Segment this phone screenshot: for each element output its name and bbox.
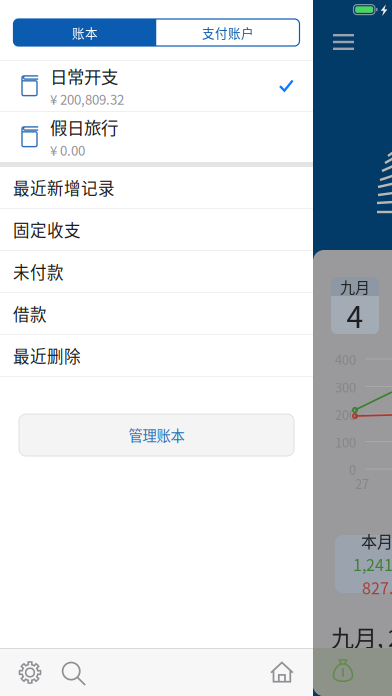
staticText: 本月	[361, 529, 392, 552]
button[interactable]: 最近删除	[0, 335, 313, 376]
staticText: 固定收支	[13, 218, 81, 241]
button[interactable]: 未付款	[0, 251, 313, 292]
button[interactable]: Search	[52, 649, 92, 696]
staticText: 最近新增记录	[13, 176, 115, 199]
button[interactable]: 固定收支	[0, 209, 313, 250]
staticText: 100	[335, 432, 356, 451]
staticText: 0	[349, 460, 356, 479]
button[interactable]: 支付账户	[156, 19, 299, 46]
button[interactable]: Home	[256, 649, 308, 696]
staticText: 日常开支	[50, 63, 118, 88]
staticText: 九月, 2	[331, 620, 392, 653]
staticText: ¥ 0.00	[50, 140, 85, 160]
staticText: 827.	[362, 576, 392, 599]
staticText: 最近删除	[13, 344, 81, 367]
button[interactable]: 日常开支	[0, 61, 313, 111]
staticText: 200	[335, 405, 356, 424]
button[interactable]: 借款	[0, 293, 313, 334]
button[interactable]: 最近新增记录	[0, 167, 313, 208]
staticText: 400	[335, 350, 356, 369]
staticText: 九月	[340, 276, 370, 297]
button[interactable]: 管理账本	[19, 414, 294, 456]
staticText: 假日旅行	[50, 114, 118, 139]
staticText: ¥ 200,809.32	[50, 89, 124, 109]
staticText: 管理账本	[128, 425, 184, 445]
staticText: 支付账户	[202, 23, 254, 42]
staticText: 借款	[13, 302, 47, 325]
button[interactable]: Settings	[8, 649, 52, 696]
staticText: 27	[355, 474, 369, 493]
button[interactable]: 账本	[13, 19, 156, 46]
staticText: 300	[335, 377, 356, 396]
button[interactable]: Menu	[329, 29, 358, 55]
staticText: 1,241	[353, 552, 392, 576]
staticText: 账本	[72, 23, 98, 42]
staticText: 未付款	[13, 260, 64, 283]
button[interactable]: 假日旅行	[0, 112, 313, 162]
staticText: 4	[346, 293, 363, 337]
